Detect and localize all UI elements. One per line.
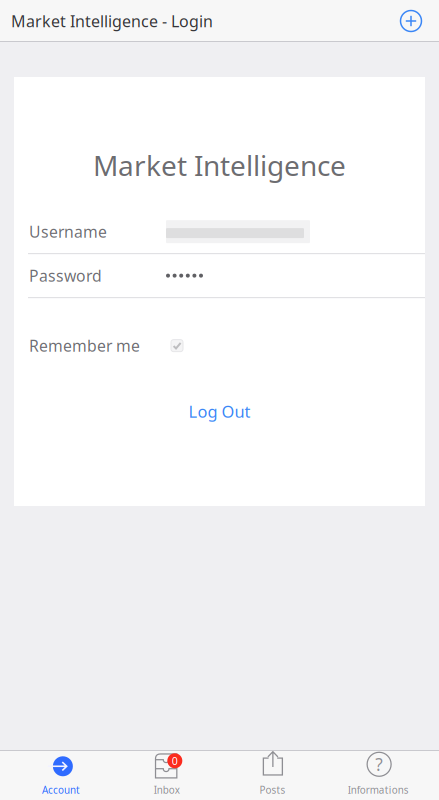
staticText: Password <box>29 265 102 286</box>
staticText: Username <box>29 221 107 242</box>
button[interactable]: Account <box>8 750 114 800</box>
staticText: Market Intelligence - Login <box>11 10 213 32</box>
button[interactable]: ? <box>325 750 431 800</box>
button[interactable]: Log Out <box>14 393 425 429</box>
staticText: Market Intelligence <box>93 146 346 184</box>
staticText: Log Out <box>188 400 250 422</box>
staticText: Posts <box>259 783 285 797</box>
staticText: Account <box>42 783 80 797</box>
staticText: Informations <box>348 783 409 797</box>
staticText: Remember me <box>29 335 140 356</box>
button[interactable]: Add <box>394 4 428 38</box>
button[interactable]: Posts <box>219 750 325 800</box>
staticText: 0 <box>172 753 178 768</box>
staticText: ? <box>375 752 383 776</box>
staticText: Inbox <box>154 783 180 797</box>
button[interactable]: 0 <box>114 750 220 800</box>
